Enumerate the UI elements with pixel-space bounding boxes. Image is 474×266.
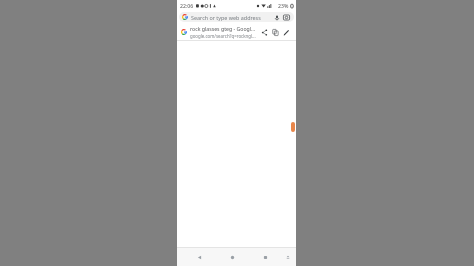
button[interactable]: Search or type web address: [179, 12, 294, 22]
button[interactable]: Recent apps: [249, 248, 282, 266]
staticText: 22:06: [180, 2, 194, 9]
staticText: 23%: [278, 2, 289, 9]
button[interactable]: Hide keyboard: [282, 248, 294, 266]
button[interactable]: Back: [183, 248, 216, 266]
button[interactable]: Google Lens search: [282, 13, 291, 22]
button[interactable]: Home: [216, 248, 249, 266]
button[interactable]: Copy link: [270, 27, 281, 38]
button[interactable]: Voice search: [272, 13, 281, 22]
staticText: google.com/search?q=rockngl...: [190, 33, 256, 39]
button[interactable]: Share: [259, 27, 270, 38]
staticText: Search or type web address: [191, 14, 270, 21]
button[interactable]: rock glasses gteg - Google ...: [177, 24, 296, 40]
staticText: rock glasses gteg - Google ...: [190, 25, 257, 32]
button[interactable]: Edit query: [281, 27, 292, 38]
